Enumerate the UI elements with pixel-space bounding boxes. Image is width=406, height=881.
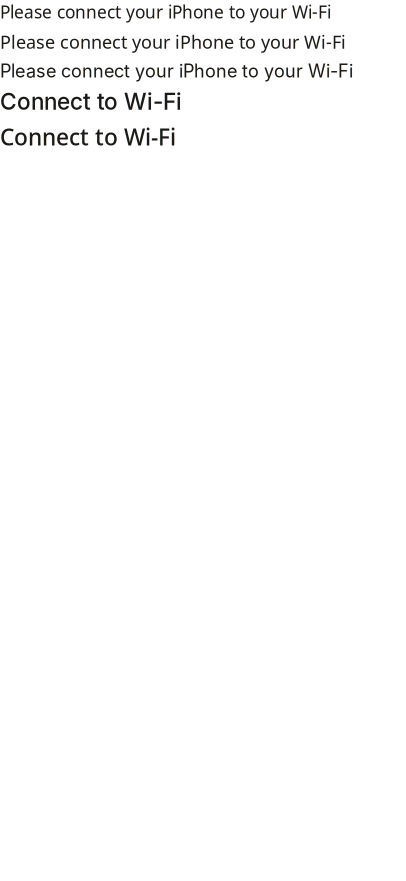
staticText: Please connect your iPhone to your Wi-Fi xyxy=(0,60,353,82)
staticText: Please connect your iPhone to your Wi-Fi xyxy=(0,0,331,24)
staticText: Please connect your iPhone to your Wi-Fi xyxy=(0,30,346,54)
staticText: Connect to Wi-Fi xyxy=(0,121,176,152)
staticText: Connect to Wi-Fi xyxy=(0,88,182,115)
